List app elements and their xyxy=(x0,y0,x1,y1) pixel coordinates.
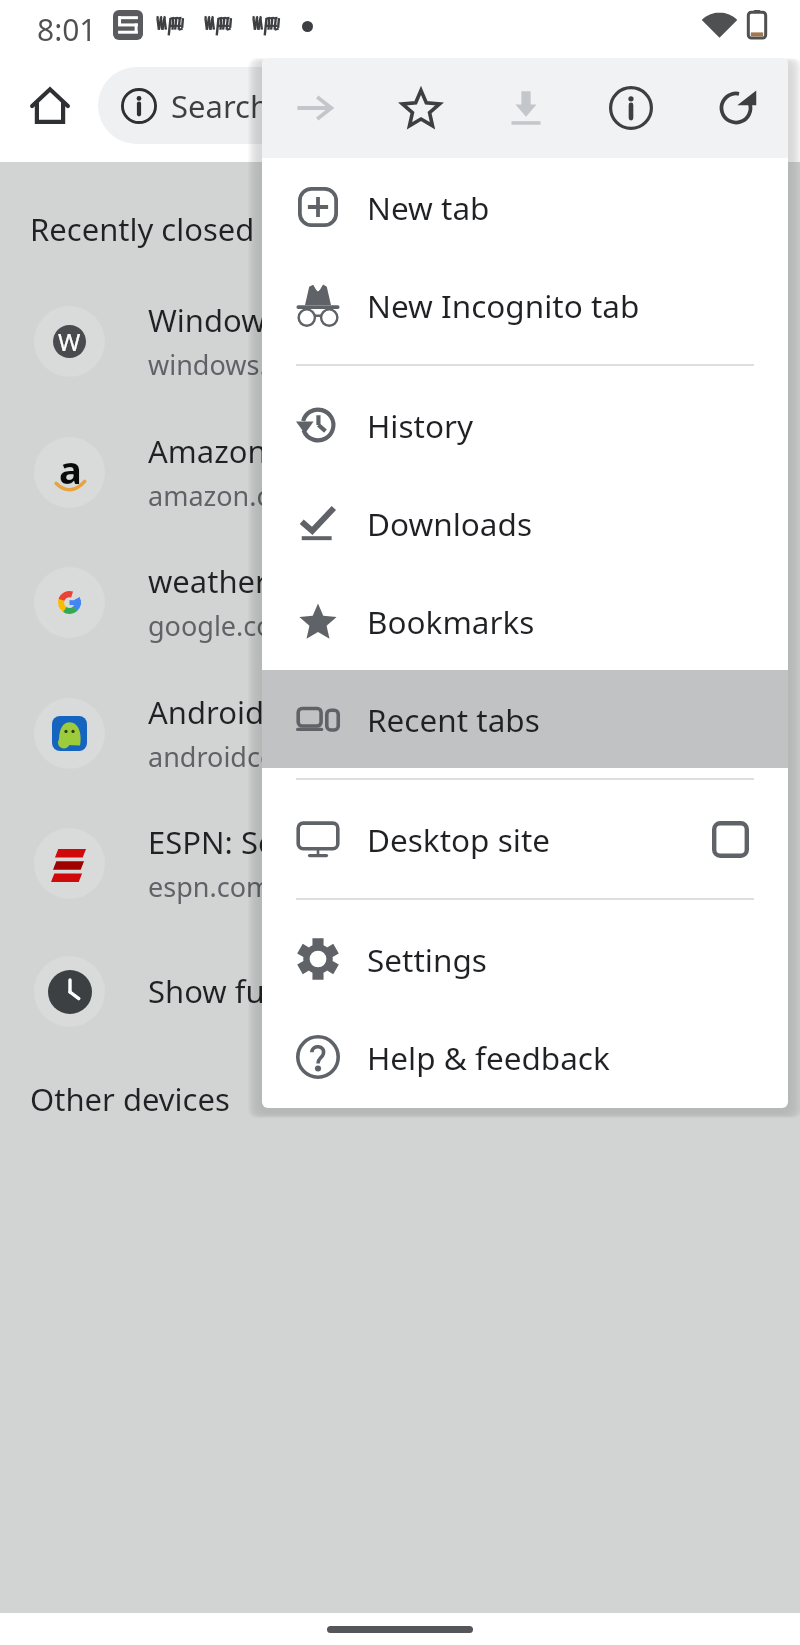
button[interactable]: Home xyxy=(22,78,78,134)
staticText: New Incognito tab xyxy=(367,284,640,327)
staticText: Search or type web address xyxy=(171,85,573,127)
staticText: a xyxy=(59,443,82,495)
staticText: Amazon.com: Online Sho xyxy=(148,430,513,472)
button[interactable]: Help & feedback xyxy=(262,1008,788,1106)
button[interactable]: Bookmark this page xyxy=(368,58,473,158)
staticText: Show full history xyxy=(148,970,390,1012)
staticText: Other devices xyxy=(30,1078,230,1120)
button[interactable]: Reload xyxy=(683,58,788,158)
staticText: espn.com xyxy=(148,868,272,905)
button[interactable]: a xyxy=(0,423,800,521)
staticText: google.com xyxy=(148,607,298,644)
staticText: History xyxy=(367,404,474,447)
staticText: Help & feedback xyxy=(367,1036,610,1079)
button[interactable]: History xyxy=(262,376,788,474)
staticText: Settings xyxy=(367,938,487,981)
staticText: Recently closed tabs xyxy=(30,208,325,250)
button[interactable]: W xyxy=(0,292,800,390)
staticText: androidcentral.com xyxy=(148,738,397,775)
staticText: Bookmarks xyxy=(367,600,535,643)
button[interactable]: weather - Google Search xyxy=(0,553,800,651)
button[interactable]: Download page xyxy=(473,58,578,158)
staticText: Android Central - Androi xyxy=(148,691,501,733)
staticText: windows.com xyxy=(148,346,322,383)
button[interactable]: Forward xyxy=(262,58,368,158)
staticText: Windows 10 - Microsoft xyxy=(148,299,488,341)
staticText: W xyxy=(58,325,81,358)
staticText: ESPN: Serving sports fa xyxy=(148,821,486,863)
button[interactable]: New tab xyxy=(262,158,788,256)
button[interactable]: Bookmarks xyxy=(262,572,788,670)
staticText: Downloads xyxy=(367,502,532,545)
staticText: Recent tabs xyxy=(367,698,540,741)
button[interactable]: Search or type web address xyxy=(98,67,758,144)
button[interactable]: Android Central - Androi xyxy=(0,684,800,782)
button[interactable]: Settings xyxy=(262,910,788,1008)
staticText: 8:01 xyxy=(37,9,97,50)
button[interactable]: Page info xyxy=(578,58,683,158)
button[interactable]: Downloads xyxy=(262,474,788,572)
button[interactable]: Show full history xyxy=(0,942,800,1040)
staticText: Desktop site xyxy=(367,818,551,861)
staticText: weather - Google Search xyxy=(148,560,505,602)
button[interactable]: Desktop site xyxy=(262,790,788,888)
button[interactable]: New Incognito tab xyxy=(262,256,788,354)
staticText: New tab xyxy=(367,186,490,229)
staticText: amazon.com xyxy=(148,477,312,514)
button[interactable]: ESPN: Serving sports fa xyxy=(0,814,800,912)
button[interactable]: Recent tabs xyxy=(262,670,788,768)
